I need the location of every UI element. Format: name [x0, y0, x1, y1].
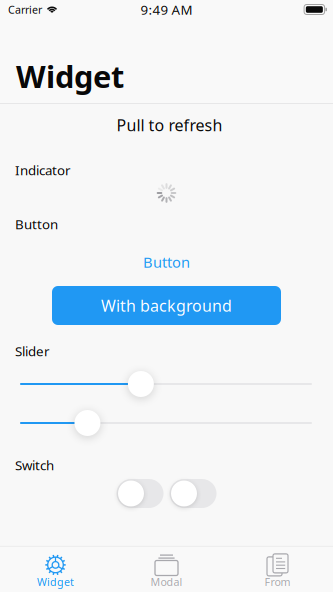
button[interactable]: Slider: [20, 369, 312, 399]
button[interactable]: From: [222, 545, 333, 592]
button[interactable]: With background: [52, 286, 281, 325]
staticText: Carrier: [8, 2, 42, 17]
button[interactable]: Slider: [20, 408, 312, 438]
button[interactable]: Switch: [116, 479, 163, 508]
staticText: Button: [143, 252, 190, 272]
staticText: From: [264, 575, 290, 589]
staticText: With background: [101, 295, 232, 316]
button[interactable]: Widget: [0, 545, 111, 592]
staticText: Widget: [37, 575, 74, 589]
staticText: Slider: [15, 342, 50, 360]
button[interactable]: Button: [116, 248, 216, 276]
staticText: Widget: [16, 56, 124, 96]
button[interactable]: Modal: [111, 545, 222, 592]
staticText: Indicator: [15, 161, 71, 179]
button[interactable]: Switch: [169, 479, 216, 508]
staticText: Pull to refresh: [116, 114, 222, 136]
staticText: Modal: [150, 575, 182, 589]
staticText: 9:49 AM: [140, 1, 192, 18]
staticText: Button: [15, 215, 58, 233]
staticText: Switch: [15, 456, 54, 474]
